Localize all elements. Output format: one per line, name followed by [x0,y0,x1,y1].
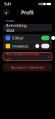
button[interactable]: Account löschen [0,63,55,71]
staticText: › [48,54,49,59]
staticText: Accounteinstellungen [6,51,39,62]
staticText: E-Mail [12,35,23,41]
staticText: ‹ [5,9,7,16]
button[interactable]: Accounteinstellungen [0,52,55,60]
staticText: PROFIL [4,19,13,23]
staticText: Profil [21,9,34,16]
button[interactable]: E-Mail [3,34,52,42]
staticText: Account löschen [11,65,44,70]
staticText: 9:41 [4,1,11,7]
staticText: Anmeldung 2024 [6,22,26,33]
button[interactable]: Hinweise [3,42,52,50]
button[interactable]: Zurück [3,9,9,16]
staticText: Hinweise [12,43,28,49]
